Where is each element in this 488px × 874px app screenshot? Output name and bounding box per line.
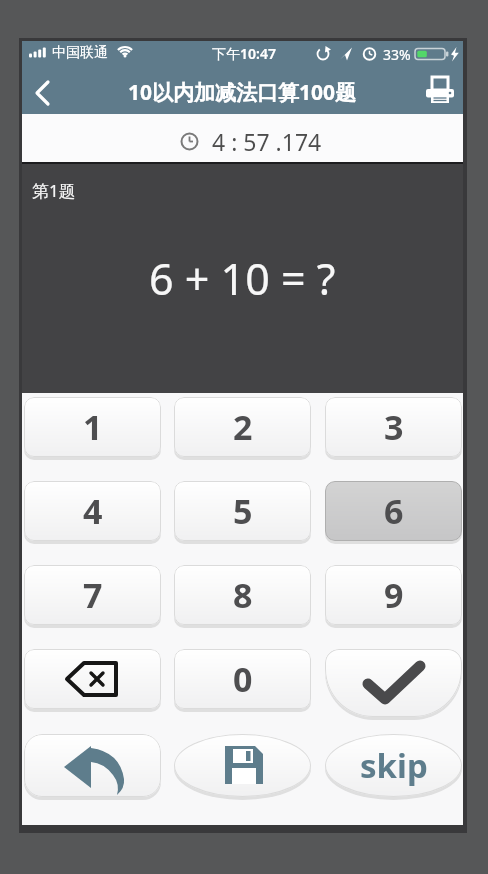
staticText: 5 <box>233 488 253 534</box>
staticText: 中国联通 <box>52 44 108 62</box>
button[interactable] <box>422 74 458 110</box>
staticText: 6 <box>384 488 404 534</box>
button[interactable] <box>174 734 311 797</box>
staticText: 4 <box>83 488 103 534</box>
button[interactable]: 7 <box>24 565 161 625</box>
staticText: 2 <box>233 404 253 450</box>
button[interactable]: 1 <box>24 397 161 457</box>
staticText: 3 <box>384 404 404 450</box>
staticText: 9 <box>384 572 404 618</box>
staticText: skip <box>360 743 428 788</box>
button[interactable]: 3 <box>325 397 462 457</box>
button[interactable] <box>325 649 462 717</box>
button[interactable]: 5 <box>174 481 311 541</box>
staticText: 0 <box>233 656 253 702</box>
staticText: 第1题 <box>32 179 76 202</box>
button[interactable]: 6 <box>325 481 462 541</box>
button[interactable]: 0 <box>174 649 311 709</box>
staticText: 下午10:47 <box>212 44 276 63</box>
staticText: 1 <box>83 404 103 450</box>
button[interactable]: skip <box>325 734 462 797</box>
button[interactable]: 2 <box>174 397 311 457</box>
staticText: 7 <box>83 572 103 618</box>
button[interactable]: 4 <box>24 481 161 541</box>
button[interactable]: 8 <box>174 565 311 625</box>
staticText: 8 <box>233 572 253 618</box>
button[interactable] <box>24 649 161 709</box>
staticText: 10以内加减法口算100题 <box>128 78 357 107</box>
button[interactable] <box>26 76 62 110</box>
button[interactable]: 9 <box>325 565 462 625</box>
button[interactable] <box>24 734 161 797</box>
staticText: 6 + 10 = ? <box>149 249 336 308</box>
staticText: 4 : 57 .174 <box>212 126 322 157</box>
staticText: 33% <box>383 45 411 64</box>
